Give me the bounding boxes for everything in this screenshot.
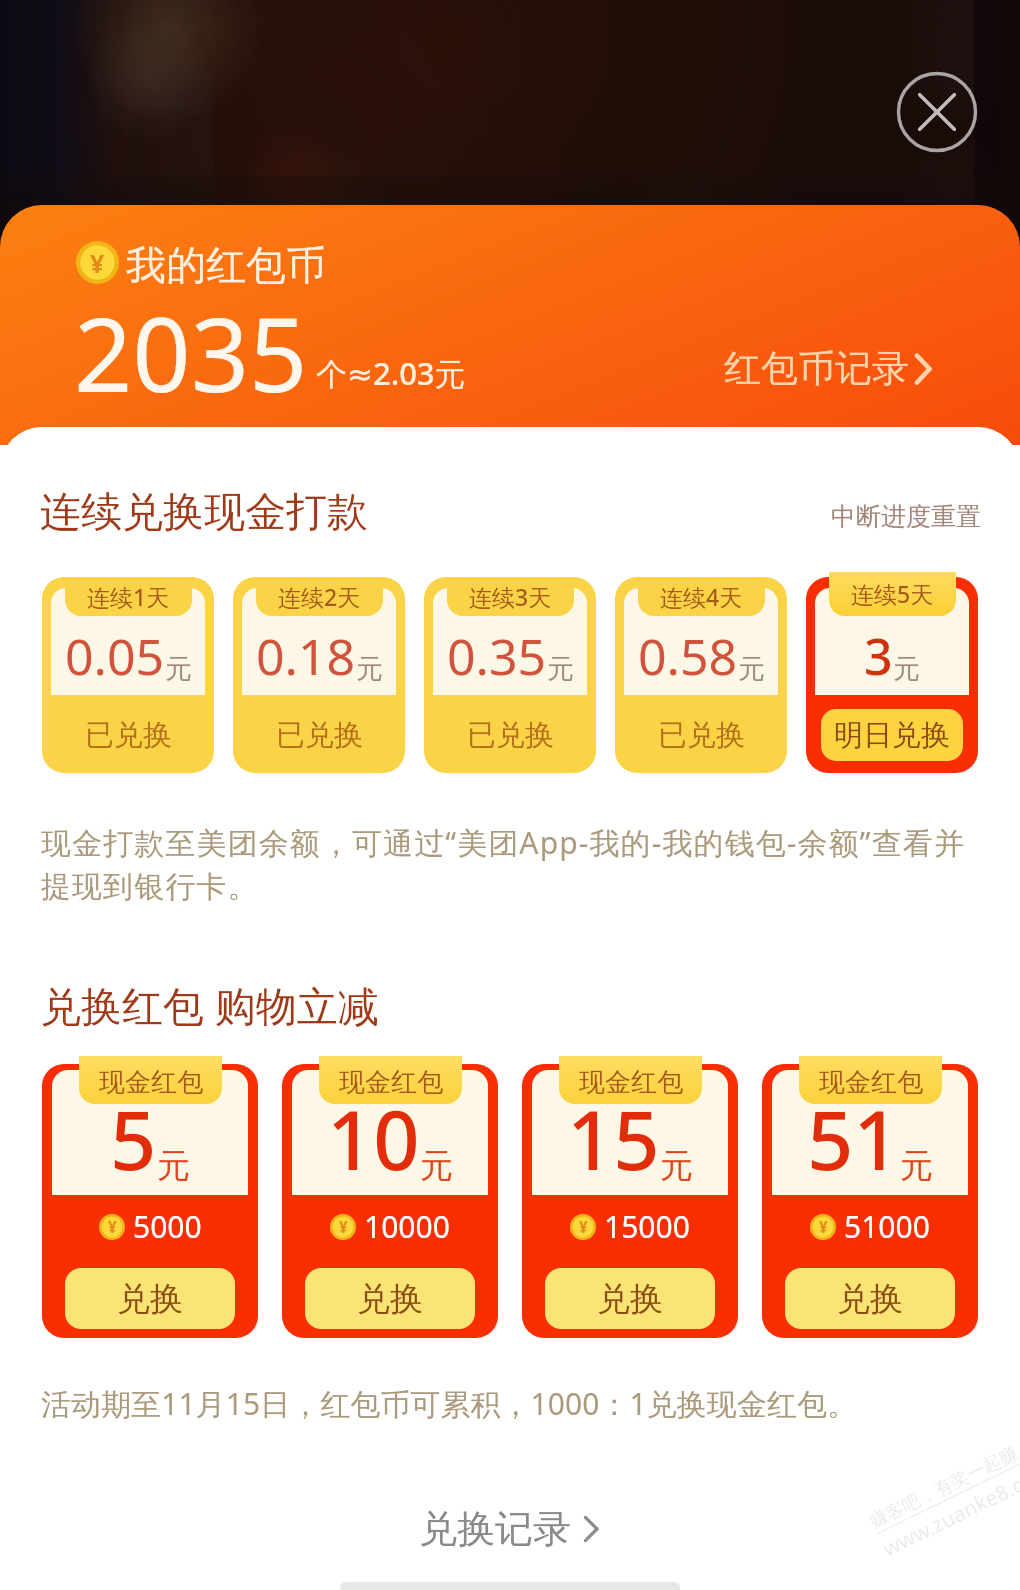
staticText: 兑换: [117, 1278, 183, 1320]
staticText: ¥: [90, 246, 105, 280]
staticText: 赚客吧，有奖一起赚！: [866, 1434, 1020, 1534]
button[interactable]: 15: [522, 1064, 738, 1338]
button[interactable]: 兑换记录: [0, 1505, 1020, 1553]
staticText: 连续兑换现金打款: [40, 487, 368, 539]
staticText: 兑换: [597, 1278, 663, 1320]
staticText: 个≈2.03元: [316, 352, 466, 394]
staticText: 元: [738, 652, 765, 686]
staticText: 现金红包: [819, 1066, 923, 1099]
staticText: 51: [807, 1083, 900, 1193]
staticText: 兑换记录: [419, 1505, 571, 1553]
staticText: 兑换: [837, 1278, 903, 1320]
staticText: 连续5天: [851, 578, 934, 609]
button[interactable]: 10: [282, 1064, 498, 1338]
staticText: 元: [157, 1145, 190, 1187]
staticText: 元: [893, 652, 920, 686]
staticText: 元: [356, 652, 383, 686]
staticText: ¥: [339, 1217, 348, 1238]
button[interactable]: 51: [762, 1064, 978, 1338]
staticText: ¥: [108, 1217, 117, 1238]
button[interactable]: 兑换: [785, 1268, 955, 1329]
staticText: 活动期至11月15日，红包币可累积，1000：1兑换现金红包。: [41, 1383, 857, 1424]
staticText: 连续4天: [660, 581, 743, 612]
staticText: 已兑换: [658, 717, 745, 754]
button[interactable]: 0.18: [233, 577, 405, 773]
staticText: 已兑换: [467, 717, 554, 754]
button[interactable]: Close: [896, 71, 978, 153]
staticText: 10000: [364, 1206, 450, 1247]
staticText: ¥: [819, 1217, 828, 1238]
staticText: 兑换: [357, 1278, 423, 1320]
staticText: 兑换红包 购物立减: [40, 977, 379, 1033]
staticText: www.zuanke8.com: [878, 1456, 1020, 1563]
staticText: 元: [547, 652, 574, 686]
staticText: 15000: [604, 1206, 690, 1247]
button[interactable]: 兑换: [65, 1268, 235, 1329]
staticText: 连续1天: [87, 581, 170, 612]
button[interactable]: 3: [806, 577, 978, 773]
staticText: 连续2天: [278, 581, 361, 612]
staticText: 已兑换: [85, 717, 172, 754]
staticText: ¥: [579, 1217, 588, 1238]
staticText: 现金红包: [579, 1066, 683, 1099]
staticText: 红包币记录: [724, 345, 909, 392]
staticText: 连续3天: [469, 581, 552, 612]
staticText: 5000: [133, 1206, 202, 1247]
button[interactable]: 明日兑换: [821, 709, 963, 761]
staticText: 0.35: [447, 622, 547, 690]
staticText: 元: [420, 1145, 453, 1187]
button[interactable]: 0.35: [424, 577, 596, 773]
staticText: 已兑换: [276, 717, 363, 754]
staticText: 明日兑换: [834, 717, 950, 754]
button[interactable]: 兑换: [305, 1268, 475, 1329]
staticText: 现金红包: [339, 1066, 443, 1099]
staticText: 2035: [74, 283, 308, 422]
staticText: 元: [165, 652, 192, 686]
staticText: 15: [567, 1083, 660, 1193]
staticText: 现金打款至美团余额，可通过“美团App-我的-我的钱包-余额”查看并提现到银行卡…: [41, 822, 969, 906]
button[interactable]: 0.58: [615, 577, 787, 773]
staticText: 0.58: [638, 622, 738, 690]
staticText: 10: [327, 1083, 420, 1193]
staticText: 现金红包: [99, 1066, 203, 1099]
button[interactable]: 红包币记录: [724, 345, 934, 392]
staticText: 我的红包币: [126, 240, 326, 290]
staticText: 中断进度重置: [831, 501, 981, 532]
staticText: 51000: [844, 1206, 930, 1247]
staticText: 元: [900, 1145, 933, 1187]
button[interactable]: 0.05: [42, 577, 214, 773]
staticText: 3: [864, 622, 893, 690]
staticText: 元: [660, 1145, 693, 1187]
button[interactable]: 5: [42, 1064, 258, 1338]
staticText: 0.05: [65, 622, 165, 690]
staticText: 5: [110, 1083, 157, 1193]
button[interactable]: 兑换: [545, 1268, 715, 1329]
staticText: 0.18: [256, 622, 356, 690]
